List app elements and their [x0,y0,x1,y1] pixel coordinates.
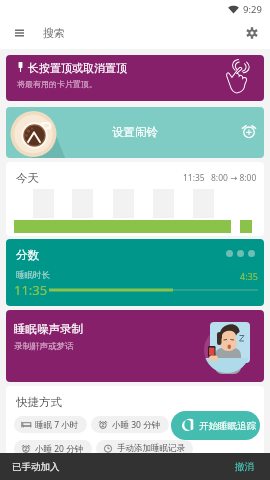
button[interactable]: 今天 [6,162,264,236]
button[interactable]: 睡眠 7 小时 [14,416,87,433]
staticText: 快捷方式 [16,395,62,409]
staticText: 设置闹铃 [112,125,158,139]
staticText: 搜索 [43,26,65,40]
staticText: 睡眠 7 小时 [35,419,79,431]
staticText: 11:35 [14,281,48,299]
button[interactable]: Settings [240,21,264,45]
button[interactable]: 开始睡眠追踪 [171,411,260,440]
button[interactable]: 撤消 [229,457,260,477]
staticText: 撤消 [235,461,254,473]
staticText: 将最有用的卡片置顶。 [17,79,97,89]
staticText: 开始睡眠追踪 [199,420,256,432]
staticText: 小睡 30 分钟 [112,419,161,431]
staticText: 睡眠时长 [16,270,50,281]
staticText: 小睡 20 分钟 [35,443,84,455]
staticText: 手动添加睡眠记录 [117,443,185,454]
staticText: 8:00 → 8:00 [211,172,257,184]
staticText: 今天 [16,171,39,185]
staticText: 长按置顶或取消置顶 [28,61,127,75]
button[interactable]: 手动添加睡眠记录 [96,440,193,457]
staticText: 4:35 [240,270,258,282]
staticText: 9:29 [243,3,262,16]
staticText: 睡眠噪声录制 [14,322,83,336]
button[interactable]: 设置闹铃 [6,107,264,158]
button[interactable]: 小睡 20 分钟 [14,440,92,457]
button[interactable]: 分数 [6,239,264,306]
staticText: 已手动加入 [12,461,60,473]
button[interactable]: 长按置顶或取消置顶 [6,55,264,101]
staticText: 录制鼾声或梦话 [14,341,74,352]
button[interactable]: 小睡 30 分钟 [91,416,169,433]
button[interactable]: Menu [7,21,31,45]
button[interactable]: Set alarm [241,123,257,139]
staticText: 11:35 [183,172,205,184]
staticText: 分数 [16,248,39,262]
button[interactable]: 睡眠噪声录制 [6,310,264,382]
